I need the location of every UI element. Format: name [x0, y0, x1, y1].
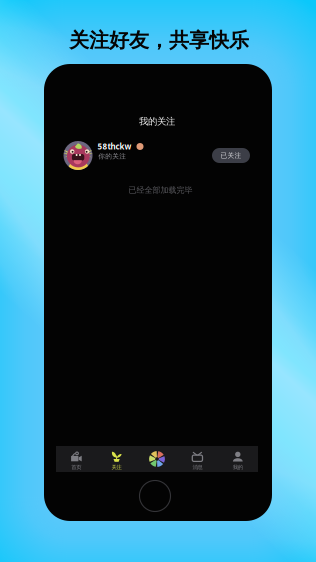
staticText: 关注: [112, 464, 122, 470]
button[interactable]: Create: [137, 446, 177, 472]
staticText: 消息: [192, 464, 202, 470]
button[interactable]: 关注: [96, 446, 137, 472]
staticText: 首页: [71, 464, 81, 470]
button[interactable]: 我的: [218, 446, 258, 472]
button[interactable]: 消息: [177, 446, 218, 472]
button[interactable]: 首页: [56, 446, 96, 472]
staticText: 已关注: [220, 151, 241, 160]
button[interactable]: 已关注: [212, 148, 250, 163]
staticText: 关注好友，共享快乐: [69, 28, 249, 53]
staticText: 我的关注: [139, 116, 175, 127]
staticText: 你的关注: [98, 152, 126, 160]
staticText: 已经全部加载完毕: [128, 185, 192, 195]
staticText: 58thckw: [97, 141, 131, 152]
staticText: 我的: [233, 464, 243, 470]
